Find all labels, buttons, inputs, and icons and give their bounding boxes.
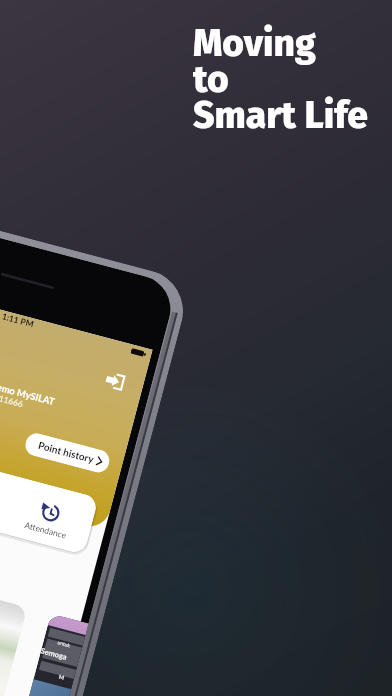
button[interactable]: Log out: [104, 371, 126, 391]
button[interactable]: [0, 549, 28, 696]
staticText: Moving to Smart Life: [193, 21, 368, 138]
staticText: Demo MySILAT: [0, 380, 56, 407]
staticText: M: [58, 674, 65, 682]
staticText: untuk: [57, 639, 71, 648]
staticText: 01711666: [0, 389, 25, 409]
staticText: Attendance: [23, 520, 67, 541]
staticText: 1:11 PM: [1, 311, 35, 329]
staticText: Semoga: [40, 646, 68, 662]
staticText: Point history: [37, 439, 95, 465]
button[interactable]: untuk: [19, 613, 88, 696]
button[interactable]: Point history: [23, 431, 112, 475]
button[interactable]: Attendance: [3, 476, 99, 555]
button[interactable]: Apply: [0, 455, 18, 533]
